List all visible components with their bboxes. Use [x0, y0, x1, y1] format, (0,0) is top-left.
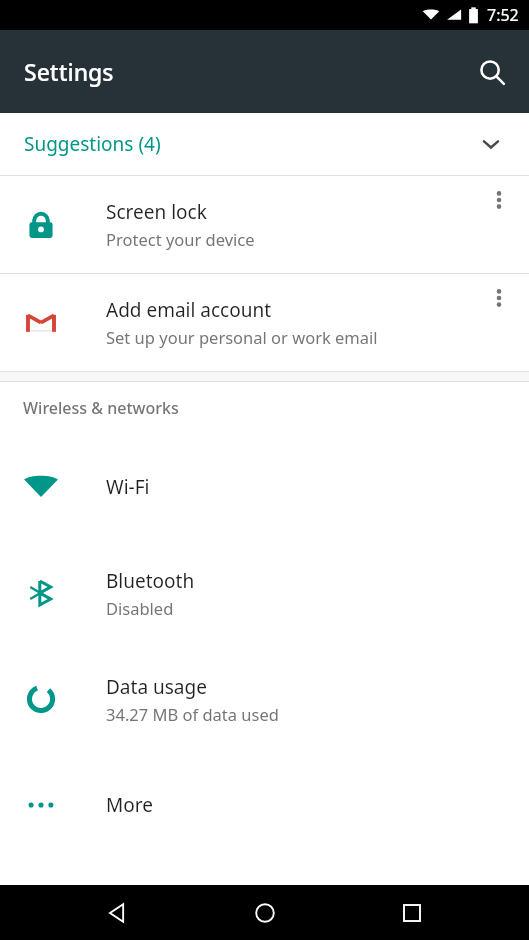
button[interactable]: Search — [467, 47, 517, 97]
staticText: Bluetooth — [106, 568, 195, 594]
button[interactable]: More options — [477, 276, 521, 320]
staticText: 34.27 MB of data used — [106, 703, 279, 725]
button[interactable]: More options — [477, 178, 521, 222]
button[interactable]: More — [0, 752, 529, 858]
staticText: More — [106, 792, 153, 818]
button[interactable]: Back — [87, 885, 147, 940]
staticText: Set up your personal or work email — [106, 326, 378, 348]
button[interactable]: Wi-Fi — [0, 434, 529, 540]
staticText: Settings — [24, 56, 114, 87]
button[interactable]: Home — [235, 885, 295, 940]
staticText: 7:52 — [487, 4, 519, 26]
staticText: Add email account — [106, 297, 272, 323]
button[interactable]: Data usage — [0, 646, 529, 752]
button[interactable]: Suggestions (4) — [0, 113, 529, 175]
button[interactable]: Bluetooth — [0, 540, 529, 646]
staticText: Data usage — [106, 674, 207, 700]
staticText: Wireless & networks — [23, 397, 179, 419]
button[interactable]: Screen lock — [0, 176, 529, 273]
staticText: Disabled — [106, 597, 174, 619]
button[interactable]: Recent apps — [382, 885, 442, 940]
staticText: Wi-Fi — [106, 474, 150, 500]
button[interactable]: Add email account — [0, 274, 529, 371]
staticText: Screen lock — [106, 199, 207, 225]
staticText: Suggestions (4) — [24, 131, 161, 157]
staticText: Protect your device — [106, 228, 255, 250]
